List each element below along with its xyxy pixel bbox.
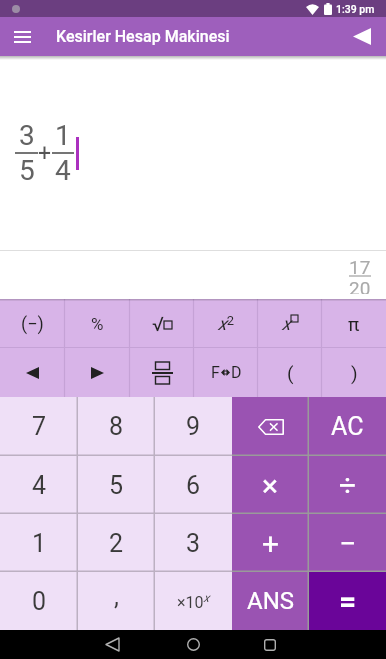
staticText: 4 (32, 471, 47, 500)
staticText: π (348, 313, 360, 335)
button[interactable]: ÷ (309, 456, 386, 514)
staticText: = (339, 584, 357, 619)
staticText: 5 (19, 154, 35, 187)
staticText: 8 (109, 412, 124, 441)
staticText: + (38, 140, 52, 167)
staticText: + (262, 526, 280, 561)
button[interactable]: % (65, 299, 130, 348)
staticText: AC (331, 412, 364, 441)
staticText: , (114, 582, 119, 611)
button[interactable]: , (78, 572, 155, 630)
button[interactable]: + (232, 514, 309, 572)
staticText: ×10x (177, 591, 210, 612)
staticText: 20 (349, 277, 371, 294)
button[interactable] (106, 638, 119, 651)
button[interactable]: × (232, 456, 309, 514)
button[interactable]: √ (130, 299, 194, 348)
button[interactable]: 8 (78, 397, 155, 456)
button[interactable] (14, 30, 31, 44)
button[interactable]: 0 (0, 572, 78, 630)
button[interactable]: 7 (0, 397, 78, 456)
staticText: 7 (32, 412, 47, 441)
staticText: 1 (32, 529, 47, 558)
button[interactable] (0, 348, 65, 397)
staticText: x (282, 313, 291, 334)
button[interactable] (130, 348, 194, 397)
staticText: F (211, 363, 220, 382)
button[interactable]: π (322, 299, 386, 348)
staticText: 1:39 pm (336, 3, 375, 15)
staticText: 6 (186, 471, 201, 500)
button[interactable]: F (194, 348, 258, 397)
button[interactable] (65, 348, 130, 397)
staticText: 9 (186, 412, 201, 441)
staticText: 4 (55, 154, 71, 187)
staticText: √ (152, 312, 164, 335)
staticText: 5 (109, 471, 124, 500)
staticText: ÷ (339, 468, 357, 503)
button[interactable]: 5 (78, 456, 155, 514)
button[interactable]: ×10x (155, 572, 232, 630)
staticText: 3 (186, 529, 201, 558)
button[interactable]: (−) (0, 299, 65, 348)
button[interactable]: − (309, 514, 386, 572)
button[interactable] (187, 638, 200, 651)
staticText: 2 (109, 529, 124, 558)
button[interactable]: 3 (155, 514, 232, 572)
button[interactable]: x2 (194, 299, 258, 348)
staticText: Kesirler Hesap Makinesi (56, 27, 230, 46)
staticText: 3 (19, 119, 35, 152)
button[interactable]: 2 (78, 514, 155, 572)
staticText: D (231, 363, 242, 382)
button[interactable]: 4 (0, 456, 78, 514)
button[interactable] (353, 28, 371, 45)
staticText: ( (287, 362, 294, 384)
staticText: 1 (55, 119, 71, 152)
staticText: 0 (32, 587, 47, 616)
staticText: − (339, 526, 357, 561)
staticText: % (91, 314, 104, 334)
staticText: (−) (21, 313, 44, 334)
button[interactable]: 9 (155, 397, 232, 456)
staticText: x2 (218, 313, 234, 335)
staticText: ) (351, 362, 358, 384)
button[interactable]: 6 (155, 456, 232, 514)
staticText: 17 (349, 256, 371, 275)
button[interactable]: x (258, 299, 322, 348)
button[interactable] (264, 639, 276, 651)
button[interactable] (232, 397, 309, 456)
button[interactable]: ) (322, 348, 386, 397)
staticText: × (262, 468, 279, 503)
button[interactable]: AC (309, 397, 386, 456)
button[interactable]: 1 (0, 514, 78, 572)
button[interactable]: = (309, 572, 386, 630)
button[interactable]: ( (258, 348, 322, 397)
staticText: ANS (247, 587, 295, 615)
button[interactable]: ANS (232, 572, 309, 630)
